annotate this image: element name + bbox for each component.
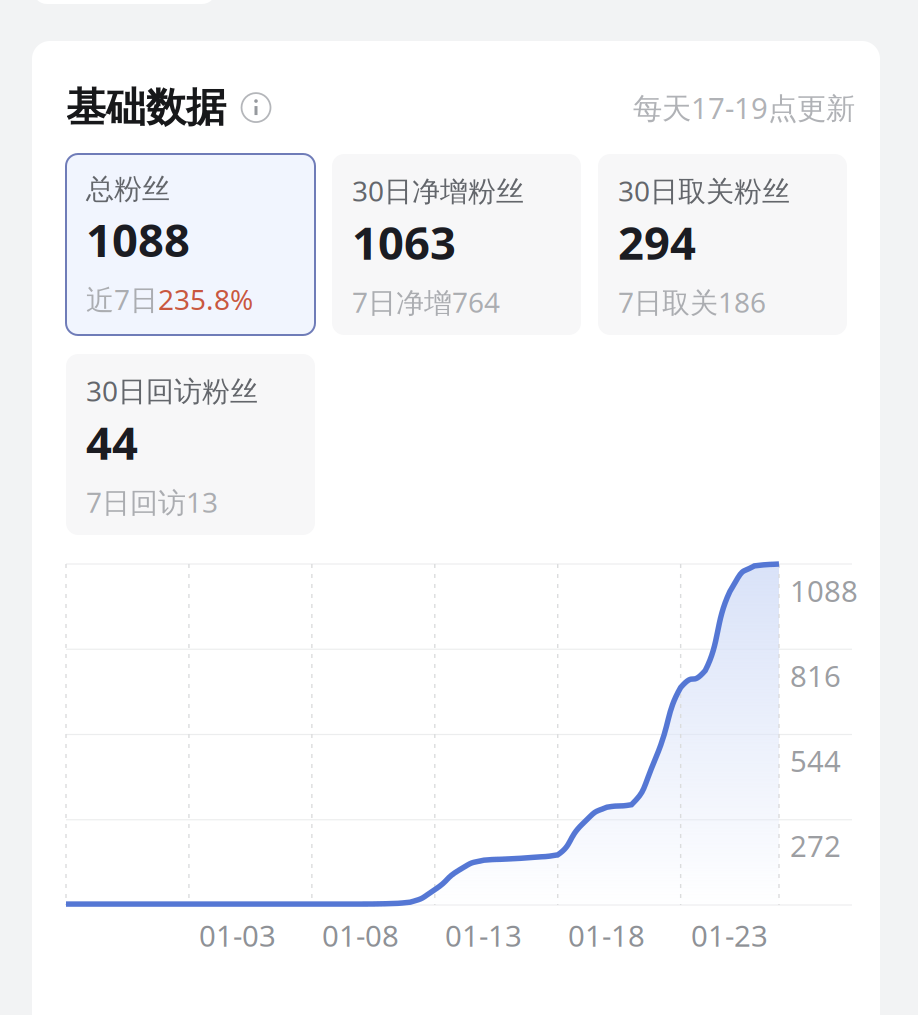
staticText: 7日净增 — [352, 283, 452, 321]
staticText: 30日净增粉丝 — [352, 172, 524, 209]
staticText: 235.8% — [158, 281, 253, 318]
staticText: 01-18 — [568, 916, 645, 955]
staticText: 30日取关粉丝 — [618, 172, 790, 209]
staticText: 01-23 — [691, 916, 768, 955]
staticText: 44 — [86, 412, 138, 472]
staticText: 每天17-19点更新 — [633, 88, 855, 127]
staticText: 544 — [790, 741, 841, 780]
staticText: 272 — [790, 826, 841, 865]
staticText: 01-08 — [322, 916, 399, 955]
staticText: 基础数据 — [66, 83, 226, 132]
staticText: 1088 — [790, 571, 858, 610]
button[interactable]: 30日净增粉丝 — [332, 154, 581, 335]
staticText: 7日取关 — [618, 283, 718, 321]
button[interactable]: 数据说明 — [239, 91, 273, 125]
staticText: 01-13 — [445, 916, 522, 955]
staticText: 7日回访 — [86, 483, 186, 521]
staticText: 816 — [790, 656, 841, 695]
button[interactable]: 30日取关粉丝 — [598, 154, 847, 335]
staticText: 1063 — [352, 212, 456, 272]
staticText: 294 — [618, 212, 696, 272]
staticText: 764 — [452, 283, 500, 321]
staticText: 1088 — [86, 209, 190, 270]
staticText: 186 — [718, 283, 766, 321]
staticText: 30日回访粉丝 — [86, 372, 258, 409]
staticText: 总粉丝 — [86, 172, 170, 206]
staticText: 01-03 — [199, 916, 276, 955]
staticText: 13 — [186, 483, 218, 521]
staticText: 近7日 — [86, 281, 158, 318]
button[interactable]: 30日回访粉丝 — [66, 354, 315, 535]
button[interactable]: 总粉丝 — [66, 154, 315, 335]
